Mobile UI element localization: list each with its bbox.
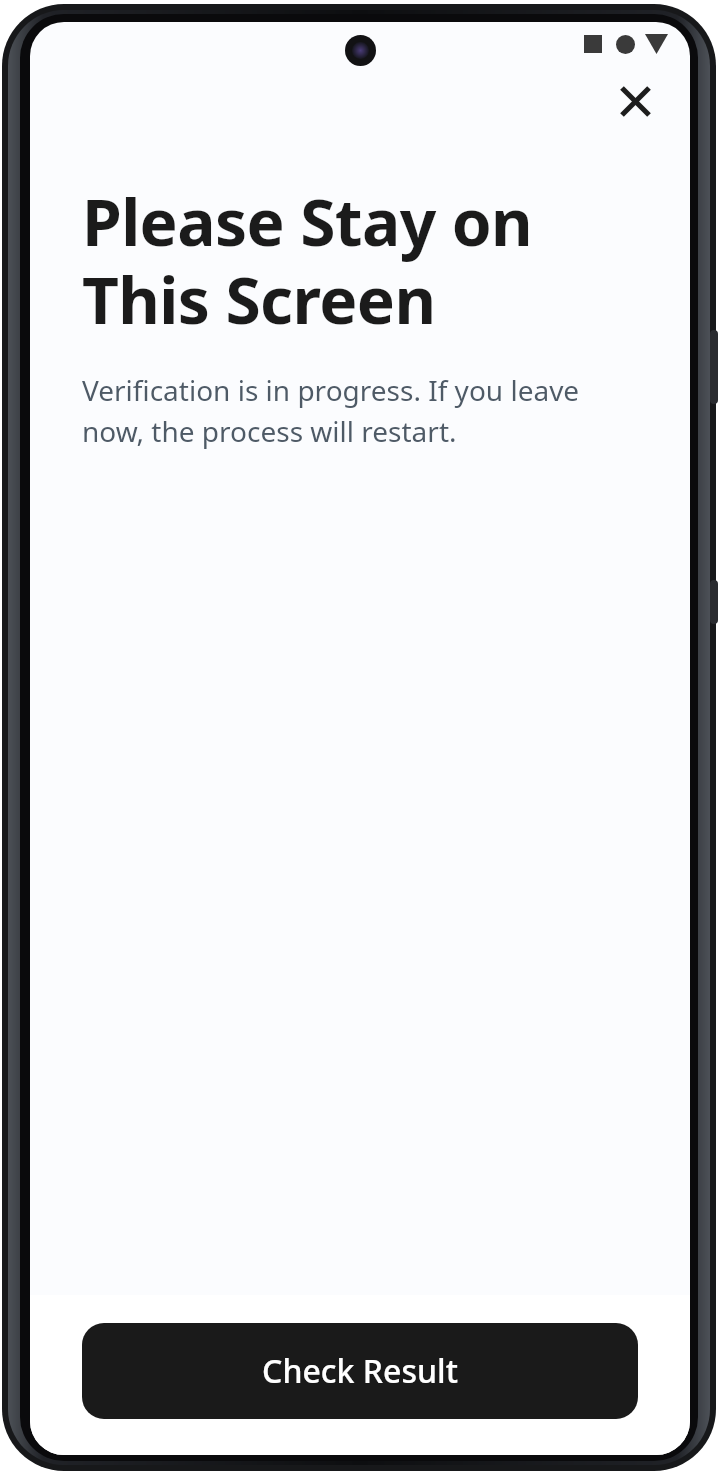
- staticText: Please Stay on This Screen: [82, 178, 638, 343]
- button[interactable]: Check Result: [82, 1323, 638, 1419]
- button[interactable]: Close: [608, 74, 662, 128]
- staticText: Verification is in progress. If you leav…: [82, 371, 638, 450]
- staticText: Check Result: [262, 1349, 458, 1393]
